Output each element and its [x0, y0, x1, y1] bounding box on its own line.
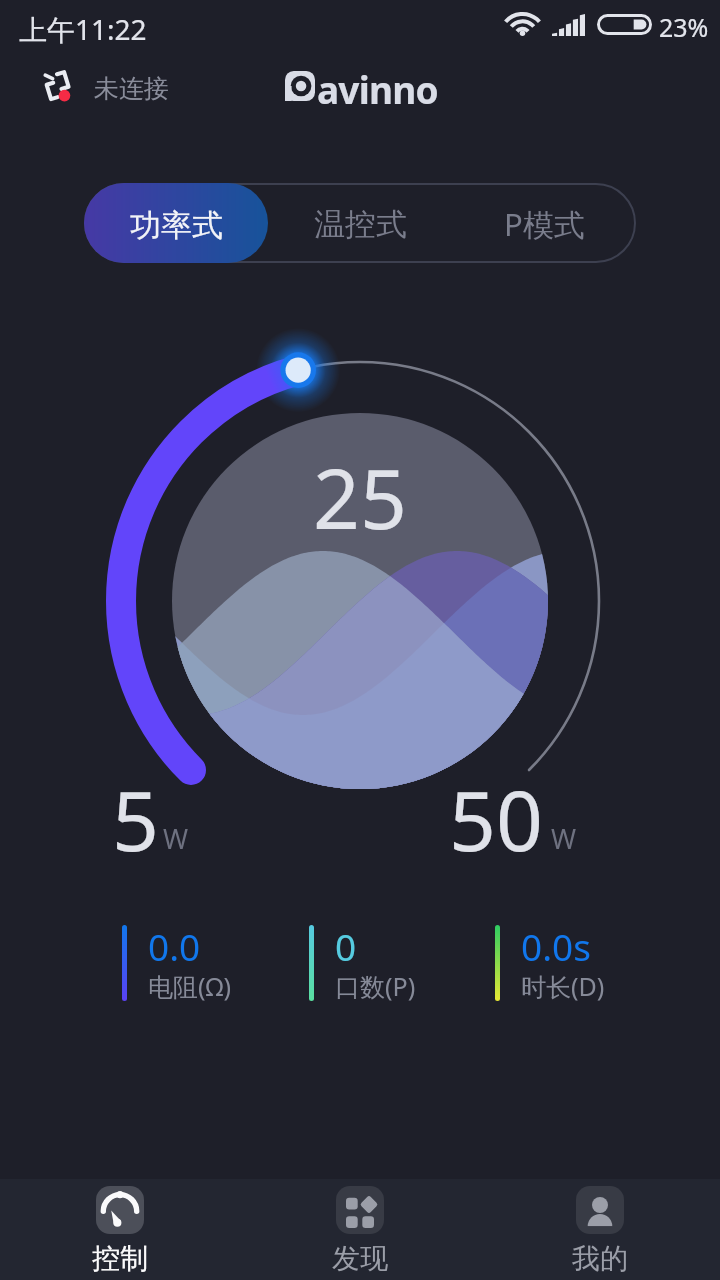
button[interactable]: 0	[303, 920, 426, 1014]
button[interactable]: P模式	[452, 183, 636, 263]
button[interactable]: 我的	[480, 1179, 720, 1280]
button[interactable]: 发现	[240, 1179, 480, 1280]
staticText: 电阻(Ω)	[148, 969, 231, 1003]
staticText: 上午11:22	[19, 10, 147, 48]
staticText: 时长(D)	[521, 969, 605, 1003]
staticText: 0.0	[148, 921, 201, 971]
button[interactable]: 0.0	[116, 920, 241, 1014]
staticText: 温控式	[314, 205, 407, 244]
staticText: avinno	[317, 64, 438, 114]
button[interactable]: 未连接	[35, 64, 177, 108]
staticText: 我的	[572, 1241, 628, 1276]
staticText: 0	[335, 921, 357, 971]
staticText: 未连接	[94, 73, 169, 104]
staticText: 50	[449, 763, 543, 875]
staticText: P模式	[504, 203, 585, 245]
staticText: W	[163, 820, 189, 857]
staticText: 23%	[659, 10, 709, 44]
button[interactable]: 温控式	[268, 183, 452, 263]
button[interactable]: 0.0s	[489, 920, 615, 1014]
staticText: W	[551, 820, 577, 857]
staticText: 发现	[332, 1241, 388, 1276]
staticText: 25	[313, 441, 407, 553]
staticText: 口数(P)	[335, 969, 416, 1003]
staticText: 功率式	[130, 206, 223, 245]
staticText: 控制	[92, 1241, 148, 1276]
staticText: 0.0s	[521, 921, 591, 971]
button[interactable]: 控制	[0, 1179, 240, 1280]
staticText: 5	[112, 763, 159, 875]
button[interactable]: 功率式	[84, 183, 268, 263]
